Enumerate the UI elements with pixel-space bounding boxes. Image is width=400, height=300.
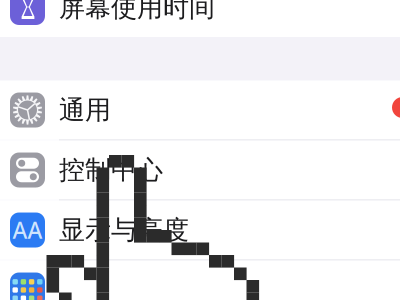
- button[interactable]: 控制中心: [0, 140, 400, 199]
- staticText: 屏幕使用时间: [59, 0, 215, 24]
- button[interactable]: 显示与亮度: [0, 200, 400, 259]
- staticText: AA: [12, 215, 42, 245]
- staticText: 显示与亮度: [59, 214, 189, 246]
- staticText: 通用: [59, 94, 111, 126]
- button[interactable]: 主屏幕与应用程序库: [0, 260, 400, 300]
- staticText: 控制中心: [59, 154, 163, 186]
- button[interactable]: 屏幕使用时间: [0, 0, 400, 37]
- button[interactable]: 通用: [0, 80, 400, 139]
